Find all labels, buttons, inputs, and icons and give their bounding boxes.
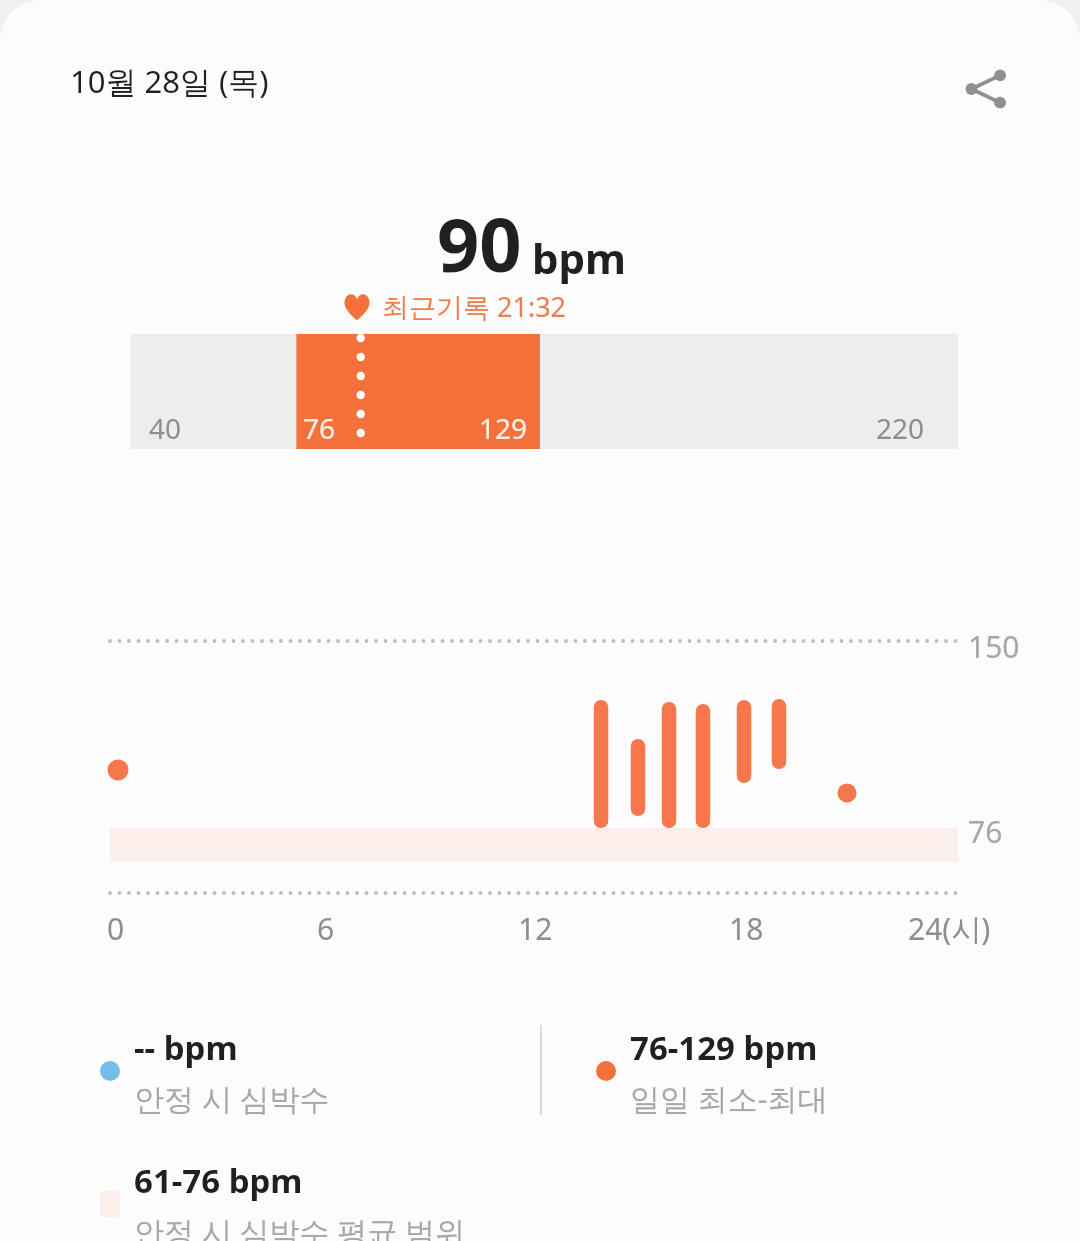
staticText: 76-129 bpm [630, 1025, 818, 1070]
staticText: 18 [729, 908, 764, 949]
staticText: 12 [518, 908, 553, 949]
staticText: 90 [437, 193, 522, 294]
staticText: 220 [876, 409, 925, 447]
staticText: bpm [532, 229, 627, 286]
staticText: 76 [968, 811, 1003, 852]
staticText: 129 [479, 409, 528, 447]
staticText: 최근기록 21:32 [382, 288, 567, 325]
staticText: -- bpm [134, 1025, 238, 1070]
staticText: 24(시) [908, 908, 991, 949]
staticText: 일일 최소-최대 [630, 1078, 828, 1119]
button[interactable]: 61-76 bpm [100, 1158, 474, 1241]
staticText: 76 [303, 409, 336, 447]
staticText: 6 [317, 908, 335, 949]
button[interactable]: 76-129 bpm [596, 1025, 836, 1119]
staticText: 61-76 bpm [134, 1158, 303, 1203]
staticText: 40 [149, 409, 182, 447]
button[interactable]: 10월 28일 (목) [68, 58, 271, 104]
staticText: 0 [107, 908, 125, 949]
staticText: 안정 시 심박수 [134, 1078, 330, 1119]
button[interactable]: Share [945, 48, 1027, 130]
staticText: 150 [968, 626, 1020, 667]
button[interactable]: -- bpm [100, 1025, 338, 1119]
staticText: 안정 시 심박수 평균 범위 [134, 1211, 466, 1241]
staticText: 10월 28일 (목) [70, 60, 269, 102]
